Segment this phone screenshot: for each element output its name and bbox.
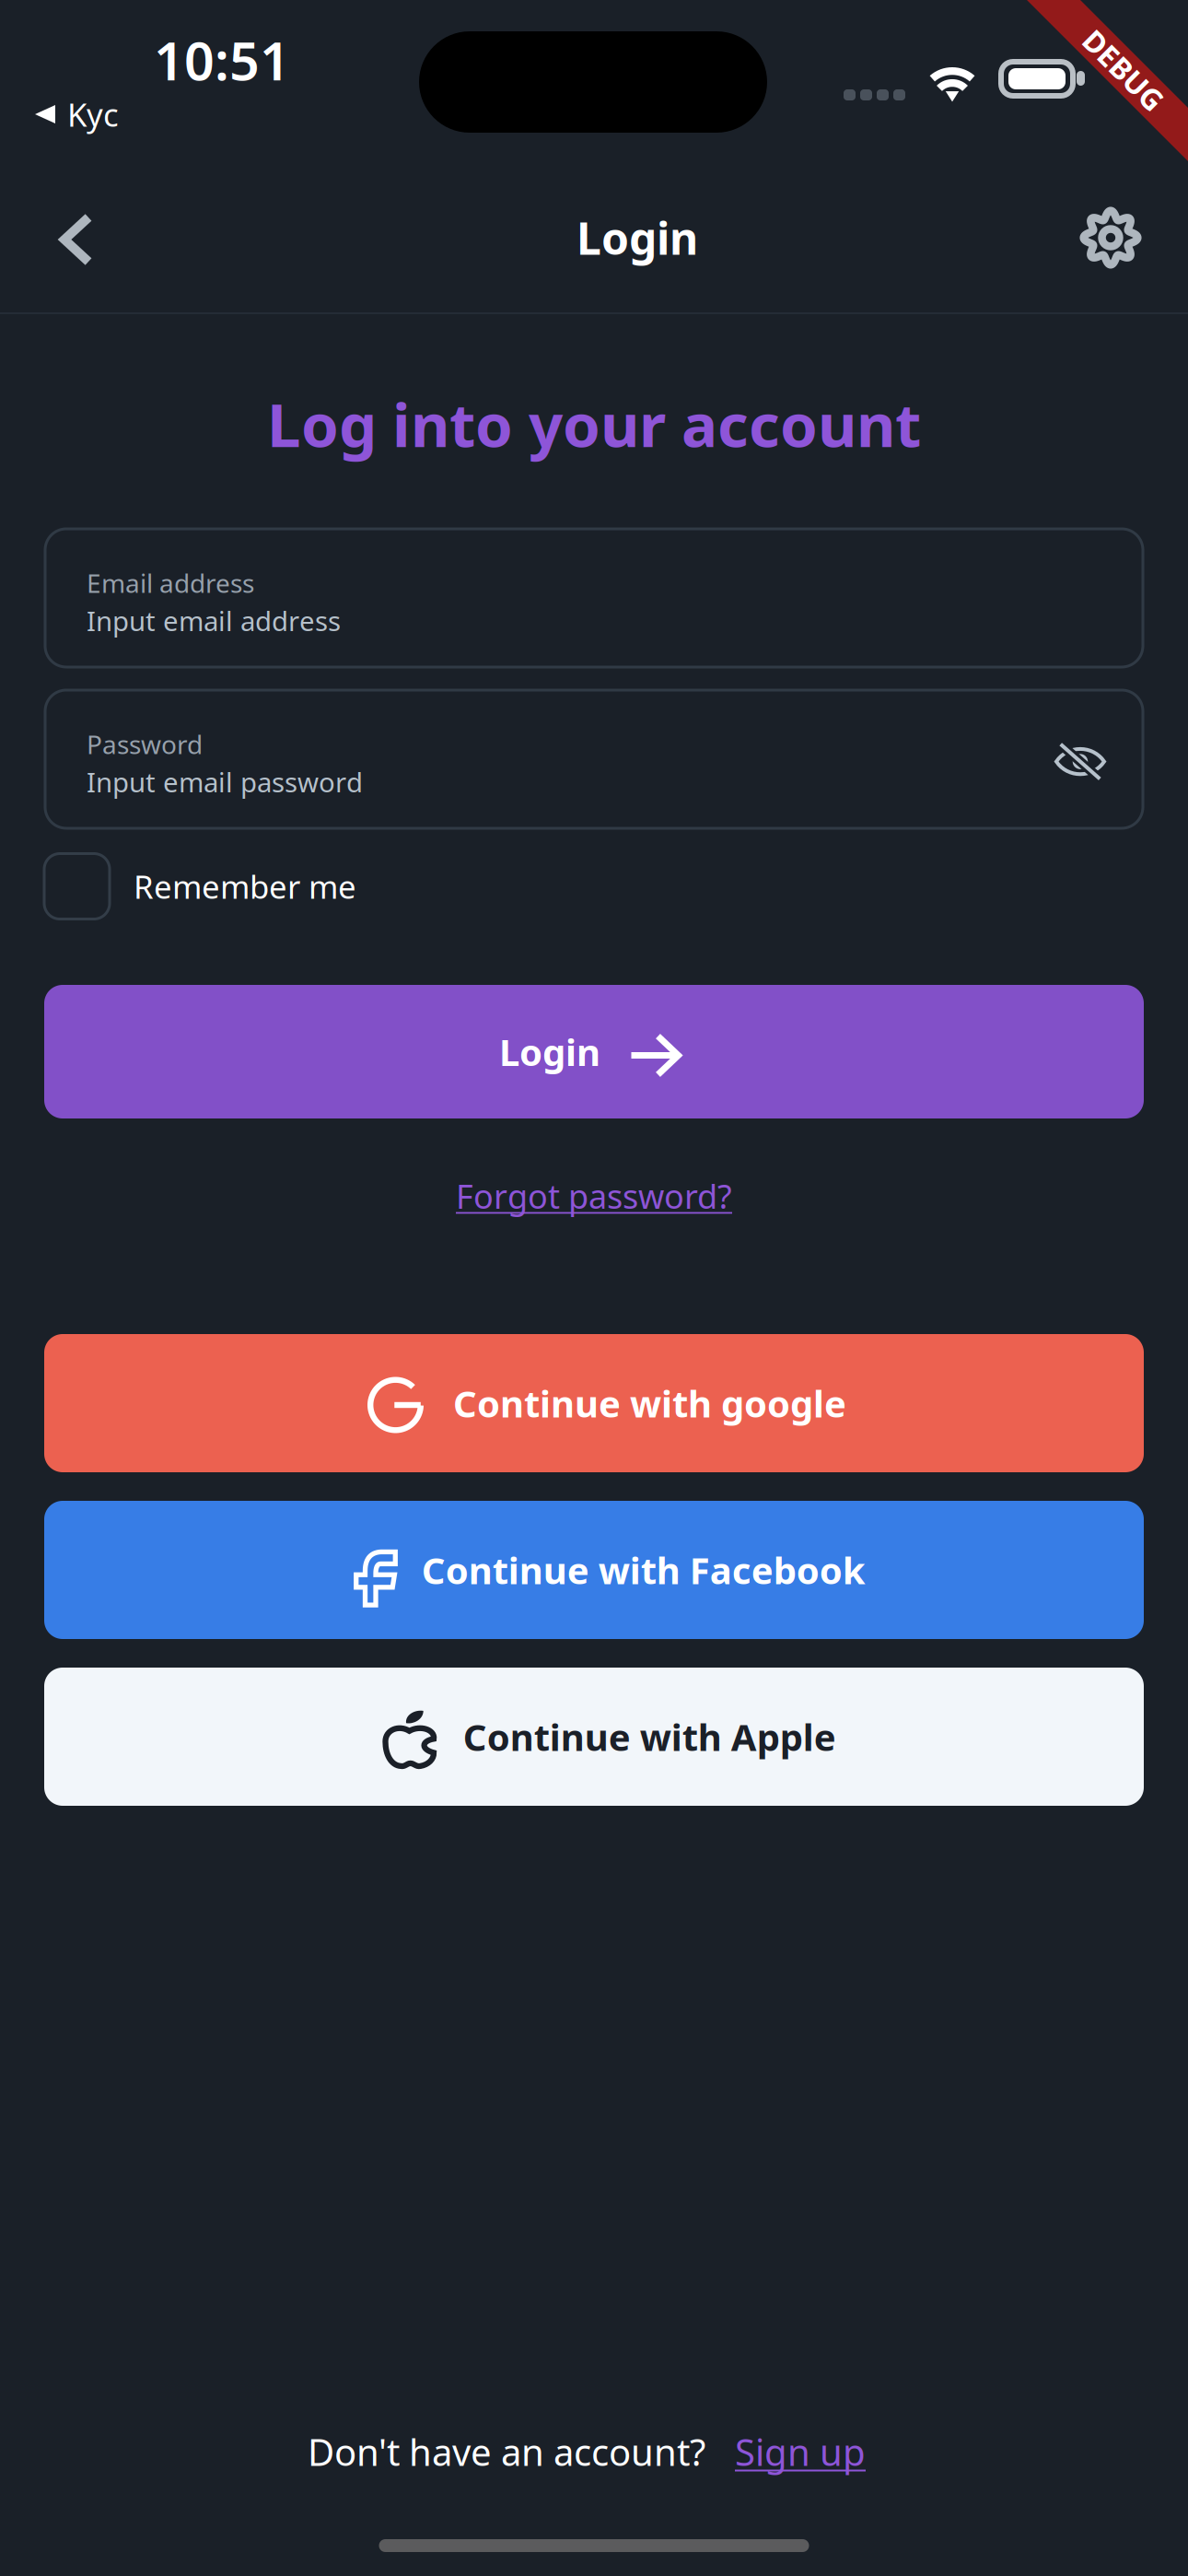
button[interactable]: Continue with google bbox=[44, 1334, 1144, 1472]
staticText: Continue with Facebook bbox=[422, 1545, 865, 1594]
staticText: Kyc bbox=[67, 93, 119, 135]
staticText: Email address bbox=[87, 566, 254, 600]
staticText: Sign up bbox=[735, 2427, 866, 2476]
staticText: Continue with Apple bbox=[463, 1712, 836, 1761]
button[interactable]: Forgot password? bbox=[410, 1168, 778, 1224]
button[interactable]: Login bbox=[44, 985, 1144, 1118]
staticText: Input email address bbox=[87, 603, 341, 639]
button[interactable]: Back bbox=[26, 189, 127, 290]
button[interactable]: Continue with Facebook bbox=[44, 1501, 1144, 1639]
staticText: Login bbox=[577, 208, 698, 267]
staticText: Don't have an account? bbox=[308, 2427, 705, 2476]
staticText: Remember me bbox=[134, 865, 356, 907]
staticText: Log into your account bbox=[267, 384, 921, 464]
staticText: Input email password bbox=[87, 764, 363, 800]
staticText: DEBUG bbox=[1073, 50, 1174, 90]
staticText: Login bbox=[499, 1027, 600, 1076]
staticText: Password bbox=[87, 727, 203, 761]
staticText: Continue with google bbox=[453, 1379, 846, 1428]
button[interactable]: Remember me bbox=[44, 852, 689, 920]
button[interactable]: Sign up bbox=[735, 2427, 866, 2476]
staticText: 10:51 bbox=[154, 25, 290, 95]
button[interactable]: Settings bbox=[1060, 187, 1161, 288]
button[interactable]: Continue with Apple bbox=[44, 1668, 1144, 1806]
staticText: Forgot password? bbox=[456, 1174, 732, 1218]
